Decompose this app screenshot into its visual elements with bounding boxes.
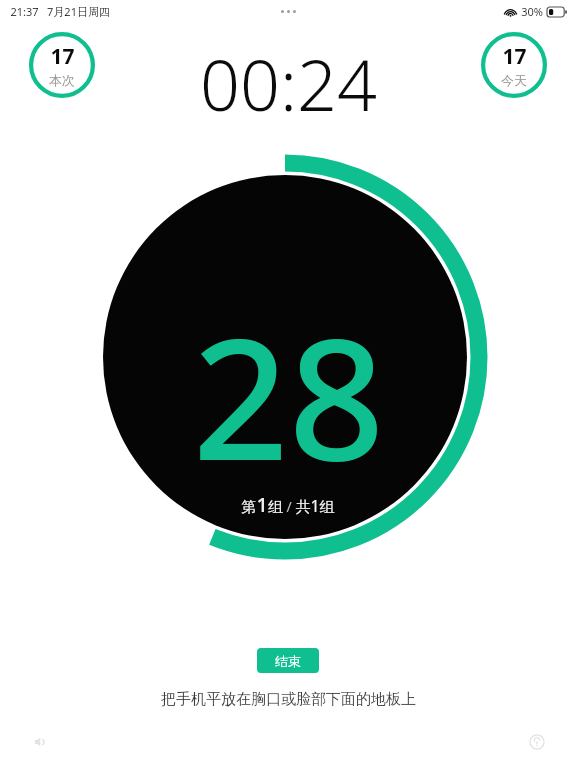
staticText: 21:37 [10,4,39,19]
staticText: 本次 [49,72,75,88]
staticText: 00:24 [200,36,377,131]
button[interactable]: 17 [481,32,547,98]
staticText: 28 [192,280,385,509]
staticText: 结束 [275,653,301,669]
button[interactable]: Sound [24,726,56,758]
button[interactable]: Help [521,726,553,758]
staticText: 17 [50,42,75,71]
button[interactable]: 结束 [257,648,319,673]
staticText: 今天 [501,72,527,88]
staticText: 17 [502,42,527,71]
staticText: 第1组 / 共1组 [241,491,335,518]
staticText: 30% [521,4,543,19]
staticText: 7月21日周四 [47,4,110,19]
staticText: 把手机平放在胸口或脸部下面的地板上 [161,690,416,709]
button[interactable]: 17 [29,32,95,98]
